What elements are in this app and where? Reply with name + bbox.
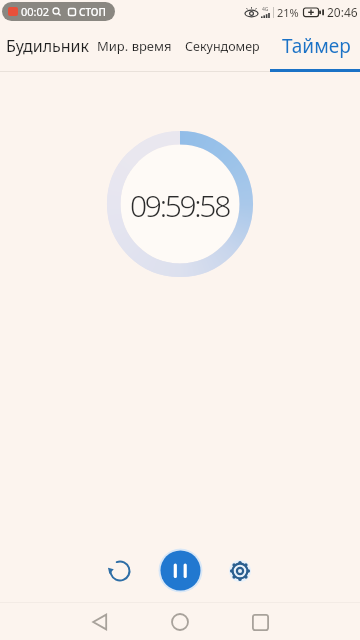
- button[interactable]: [78, 604, 122, 640]
- staticText: 20:46: [327, 4, 358, 20]
- button[interactable]: [158, 604, 202, 640]
- button[interactable]: 00:02: [2, 2, 115, 21]
- button[interactable]: Будильник: [6, 35, 90, 57]
- button[interactable]: Секундомер: [185, 38, 260, 55]
- button[interactable]: [158, 548, 203, 593]
- staticText: 00:02: [21, 4, 50, 19]
- staticText: 4G: [262, 6, 269, 13]
- staticText: СТОП: [79, 5, 106, 19]
- staticText: 21%: [277, 5, 299, 20]
- button[interactable]: Таймер: [282, 33, 351, 59]
- button[interactable]: [218, 549, 262, 593]
- button[interactable]: [98, 549, 142, 593]
- staticText: 09:59:58: [130, 185, 230, 226]
- button[interactable]: Мир. время: [97, 37, 172, 55]
- button[interactable]: [238, 604, 282, 640]
